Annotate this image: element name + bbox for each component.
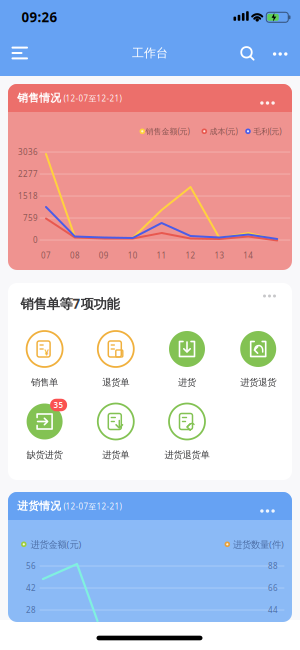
staticText: 56 [26,561,36,571]
staticText: 销售金额(元) [145,126,189,137]
staticText: 成本(元) [209,126,237,137]
button[interactable]: 功能更多 [252,286,286,306]
staticText: 进货数量(件) [233,538,284,550]
button[interactable]: 进货 [151,325,222,395]
staticText: 44 [268,605,278,615]
button[interactable]: 进货情况更多 [250,501,284,521]
staticText: 销售单等7项功能 [20,295,119,312]
staticText: 42 [26,583,36,593]
staticText: 66 [268,583,278,593]
button[interactable]: 进货退货 [223,325,294,395]
staticText: 88 [268,561,278,571]
staticText: 缺货进货 [27,449,63,461]
staticText: 11 [157,250,167,261]
staticText: (12-07至12-21) [63,501,121,512]
staticText: 2277 [18,169,38,179]
staticText: 工作台 [132,46,168,60]
staticText: 08 [70,250,80,261]
button[interactable]: 退货单 [80,325,151,395]
staticText: 0 [33,235,38,245]
staticText: 进货情况 [17,499,61,512]
staticText: 14 [243,250,253,261]
staticText: ¥ [45,347,50,358]
staticText: 销售单 [31,377,58,388]
button[interactable]: 进货单 [80,397,151,467]
button[interactable]: 缺货进货 [9,397,80,467]
button[interactable]: 销售情况更多 [250,93,284,113]
staticText: 销售情况 [17,91,61,104]
staticText: 进货退货 [240,377,276,388]
staticText: 12 [185,250,195,261]
button[interactable]: 更多 [266,43,294,65]
button[interactable]: ¥ [9,325,80,395]
staticText: 进货单 [102,449,129,461]
staticText: 759 [23,213,38,223]
staticText: 退货单 [102,377,129,388]
button[interactable]: 进货退货单 [151,397,222,467]
staticText: 13 [214,250,224,261]
staticText: 3036 [18,147,38,157]
staticText: 进货 [178,377,196,388]
staticText: 进货金额(元) [30,538,81,550]
staticText: 1518 [18,191,38,201]
staticText: 09 [99,250,109,261]
button[interactable]: 搜索 [236,42,260,66]
staticText: (12-07至12-21) [63,93,121,104]
staticText: 09:26 [21,8,57,26]
staticText: 35 [54,400,64,410]
staticText: 10 [128,250,138,261]
staticText: 28 [26,605,36,615]
staticText: 毛利(元) [253,126,281,137]
button[interactable]: 菜单 [8,40,31,66]
staticText: 进货退货单 [164,449,209,461]
staticText: 07 [41,250,51,261]
